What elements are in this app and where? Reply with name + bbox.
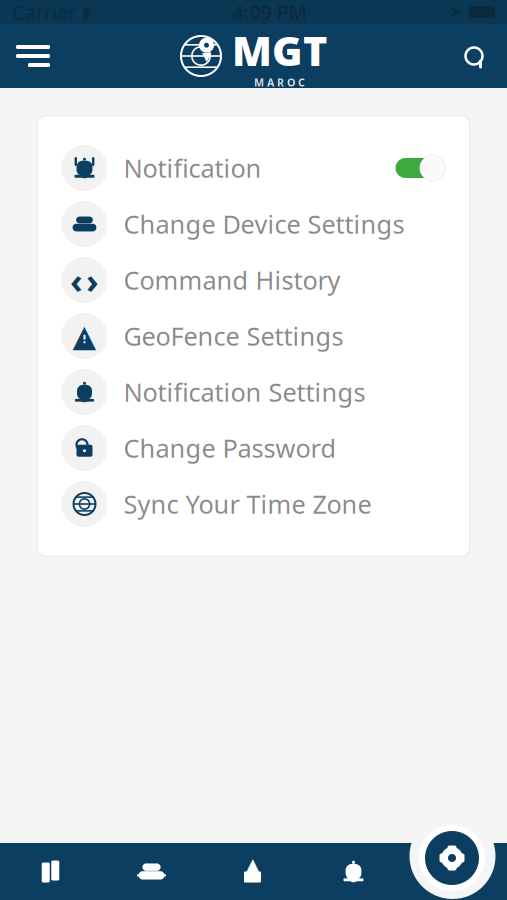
- button[interactable]: ‹: [37, 252, 469, 308]
- staticText: Command History: [123, 263, 340, 297]
- staticText: MGT: [232, 22, 327, 77]
- button[interactable]: Notification Settings: [37, 364, 469, 420]
- staticText: Sync Your Time Zone: [123, 487, 371, 521]
- button[interactable]: Vehicles: [101, 843, 202, 900]
- button[interactable]: Search: [441, 24, 507, 88]
- staticText: Carrier: [12, 0, 76, 25]
- button[interactable]: ▲: [37, 308, 469, 364]
- staticText: ▼: [202, 50, 211, 63]
- staticText: ▲: [244, 853, 261, 879]
- staticText: ‹: [70, 257, 83, 303]
- button[interactable]: Change Device Settings: [37, 196, 469, 252]
- button[interactable]: Change Password: [37, 420, 469, 476]
- staticText: Change Password: [123, 431, 336, 465]
- button[interactable]: Home: [202, 843, 303, 900]
- staticText: GeoFence Settings: [123, 319, 343, 353]
- button[interactable]: Settings: [417, 823, 487, 893]
- button[interactable]: Menu: [0, 24, 66, 88]
- button[interactable]: Notifications: [303, 843, 404, 900]
- button[interactable]: Sync Your Time Zone: [37, 476, 469, 532]
- staticText: ➤: [449, 3, 462, 21]
- staticText: ›: [86, 257, 99, 303]
- button[interactable]: Notification: [37, 140, 469, 196]
- staticText: Notification Settings: [123, 375, 365, 409]
- staticText: ▲: [72, 319, 96, 353]
- staticText: Change Device Settings: [123, 207, 404, 241]
- staticText: ◗: [82, 2, 91, 22]
- staticText: Notification: [123, 151, 261, 185]
- button[interactable]: Map: [0, 843, 101, 900]
- staticText: 4:09 PM: [232, 0, 307, 25]
- staticText: M A R O C: [254, 75, 305, 90]
